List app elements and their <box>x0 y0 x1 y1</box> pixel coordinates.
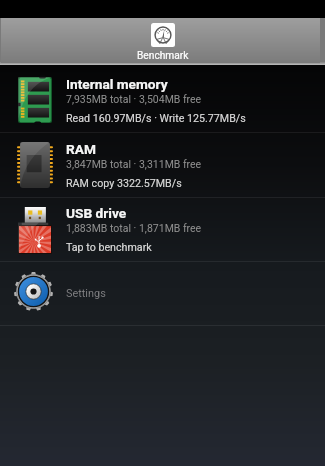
other: Benchmark <box>151 23 175 47</box>
staticText: RAM <box>66 141 96 157</box>
staticText: Read 160.97MB/s · Write 125.77MB/s <box>66 112 246 125</box>
staticText: 3,847MB total · 3,311MB free <box>66 158 202 170</box>
button[interactable]: Settings <box>0 262 325 325</box>
staticText: Benchmark <box>137 50 189 62</box>
staticText: 7,935MB total · 3,504MB free <box>66 93 202 105</box>
staticText: RAM copy 3322.57MB/s <box>66 177 182 190</box>
staticText: Internal memory <box>66 76 168 92</box>
staticText: Settings <box>66 287 106 300</box>
staticText: USB drive <box>66 205 127 221</box>
staticText: Tap to benchmark <box>66 241 152 254</box>
button[interactable]: Internal memory <box>0 65 325 132</box>
staticText: 1,883MB total · 1,871MB free <box>66 222 202 234</box>
button[interactable]: RAM <box>0 133 325 197</box>
button[interactable]: USB drive <box>0 198 325 261</box>
